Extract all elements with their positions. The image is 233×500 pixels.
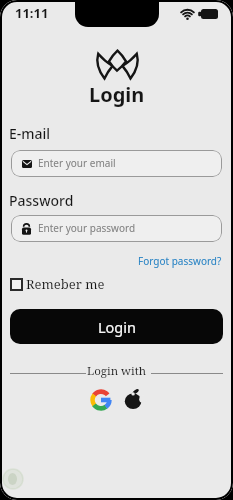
button[interactable]: Enter your password <box>11 215 222 242</box>
staticText: 11:11 <box>15 4 49 22</box>
staticText: E-mail <box>9 124 51 143</box>
staticText: Login <box>98 317 136 337</box>
button[interactable]: Forgot password? <box>138 254 222 268</box>
staticText: Enter your password <box>38 221 136 235</box>
staticText: Login <box>89 81 145 108</box>
staticText: Remeber me <box>26 275 105 293</box>
button[interactable]: Login <box>10 309 223 344</box>
staticText: Login with <box>87 363 147 379</box>
button[interactable] <box>124 388 143 410</box>
button[interactable]: Enter your email <box>11 150 222 177</box>
button[interactable] <box>90 389 112 411</box>
button[interactable]: Remeber me <box>10 275 105 293</box>
staticText: Enter your email <box>38 156 116 170</box>
staticText: Password <box>9 191 74 210</box>
